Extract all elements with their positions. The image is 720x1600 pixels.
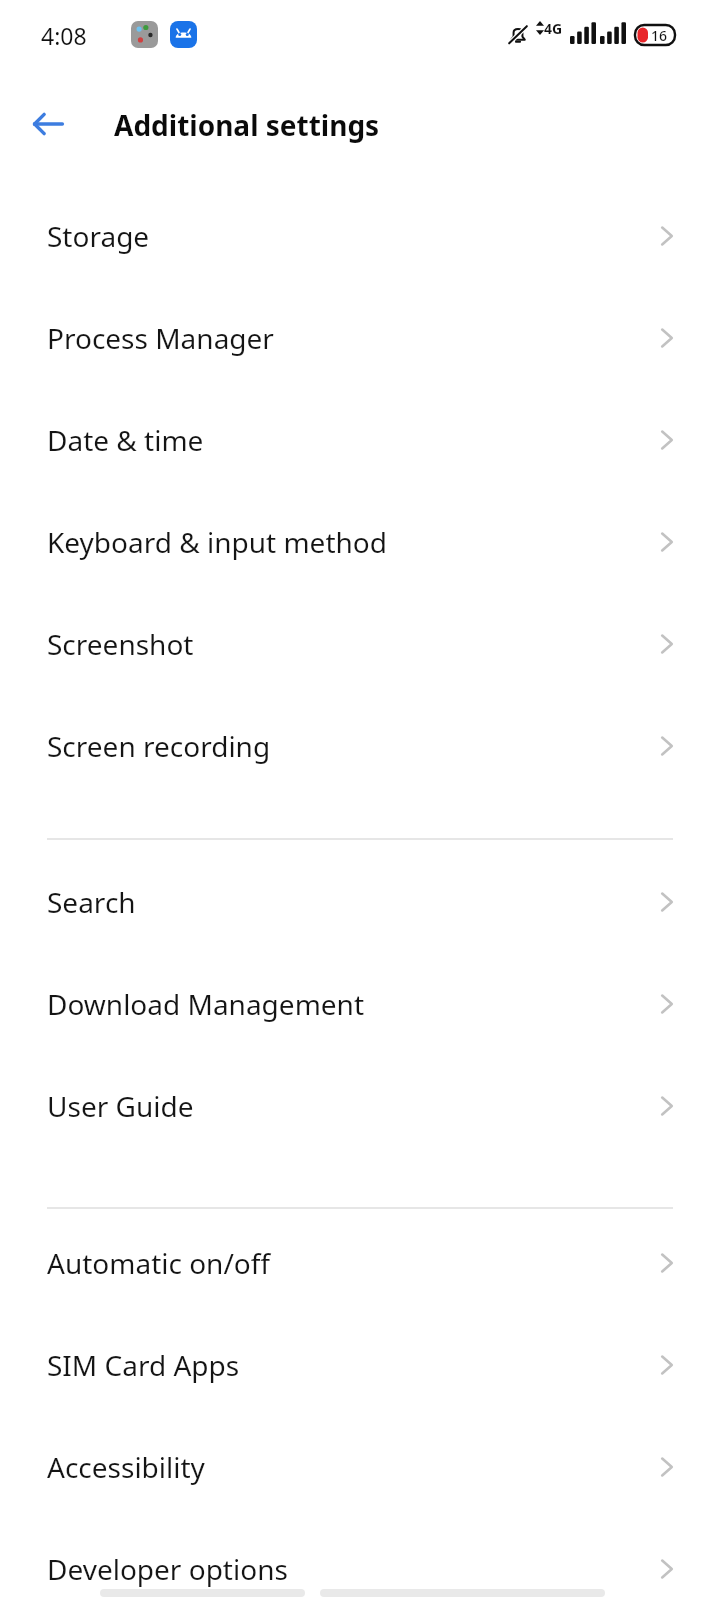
staticText: Screenshot (47, 625, 194, 663)
staticText: Date & time (47, 421, 204, 459)
button[interactable]: Date & time (0, 389, 720, 491)
button[interactable]: SIM Card Apps (0, 1314, 720, 1416)
button[interactable]: Download Management (0, 953, 720, 1055)
button[interactable]: Process Manager (0, 287, 720, 389)
staticText: Additional settings (114, 106, 380, 144)
button[interactable]: Storage (0, 185, 720, 287)
button[interactable]: Keyboard & input method (0, 491, 720, 593)
staticText: Search (47, 883, 136, 921)
staticText: 4G (544, 19, 563, 38)
staticText: Developer options (47, 1550, 288, 1588)
staticText: Storage (47, 217, 150, 255)
button[interactable]: Automatic on/off (0, 1212, 720, 1314)
staticText: 16 (651, 26, 668, 45)
staticText: User Guide (47, 1087, 194, 1125)
button[interactable]: Screenshot (0, 593, 720, 695)
staticText: Process Manager (47, 319, 274, 357)
button[interactable]: Back (24, 100, 72, 148)
button[interactable]: Screen recording (0, 695, 720, 797)
staticText: Download Management (47, 985, 365, 1023)
staticText: Keyboard & input method (47, 523, 387, 561)
staticText: Automatic on/off (47, 1244, 271, 1282)
button[interactable]: Developer options (0, 1518, 720, 1600)
staticText: Screen recording (47, 727, 271, 765)
staticText: SIM Card Apps (47, 1346, 240, 1384)
staticText: 4:08 (41, 20, 87, 51)
button[interactable]: Accessibility (0, 1416, 720, 1518)
staticText: Accessibility (47, 1448, 205, 1486)
button[interactable]: Search (0, 851, 720, 953)
button[interactable]: User Guide (0, 1055, 720, 1157)
